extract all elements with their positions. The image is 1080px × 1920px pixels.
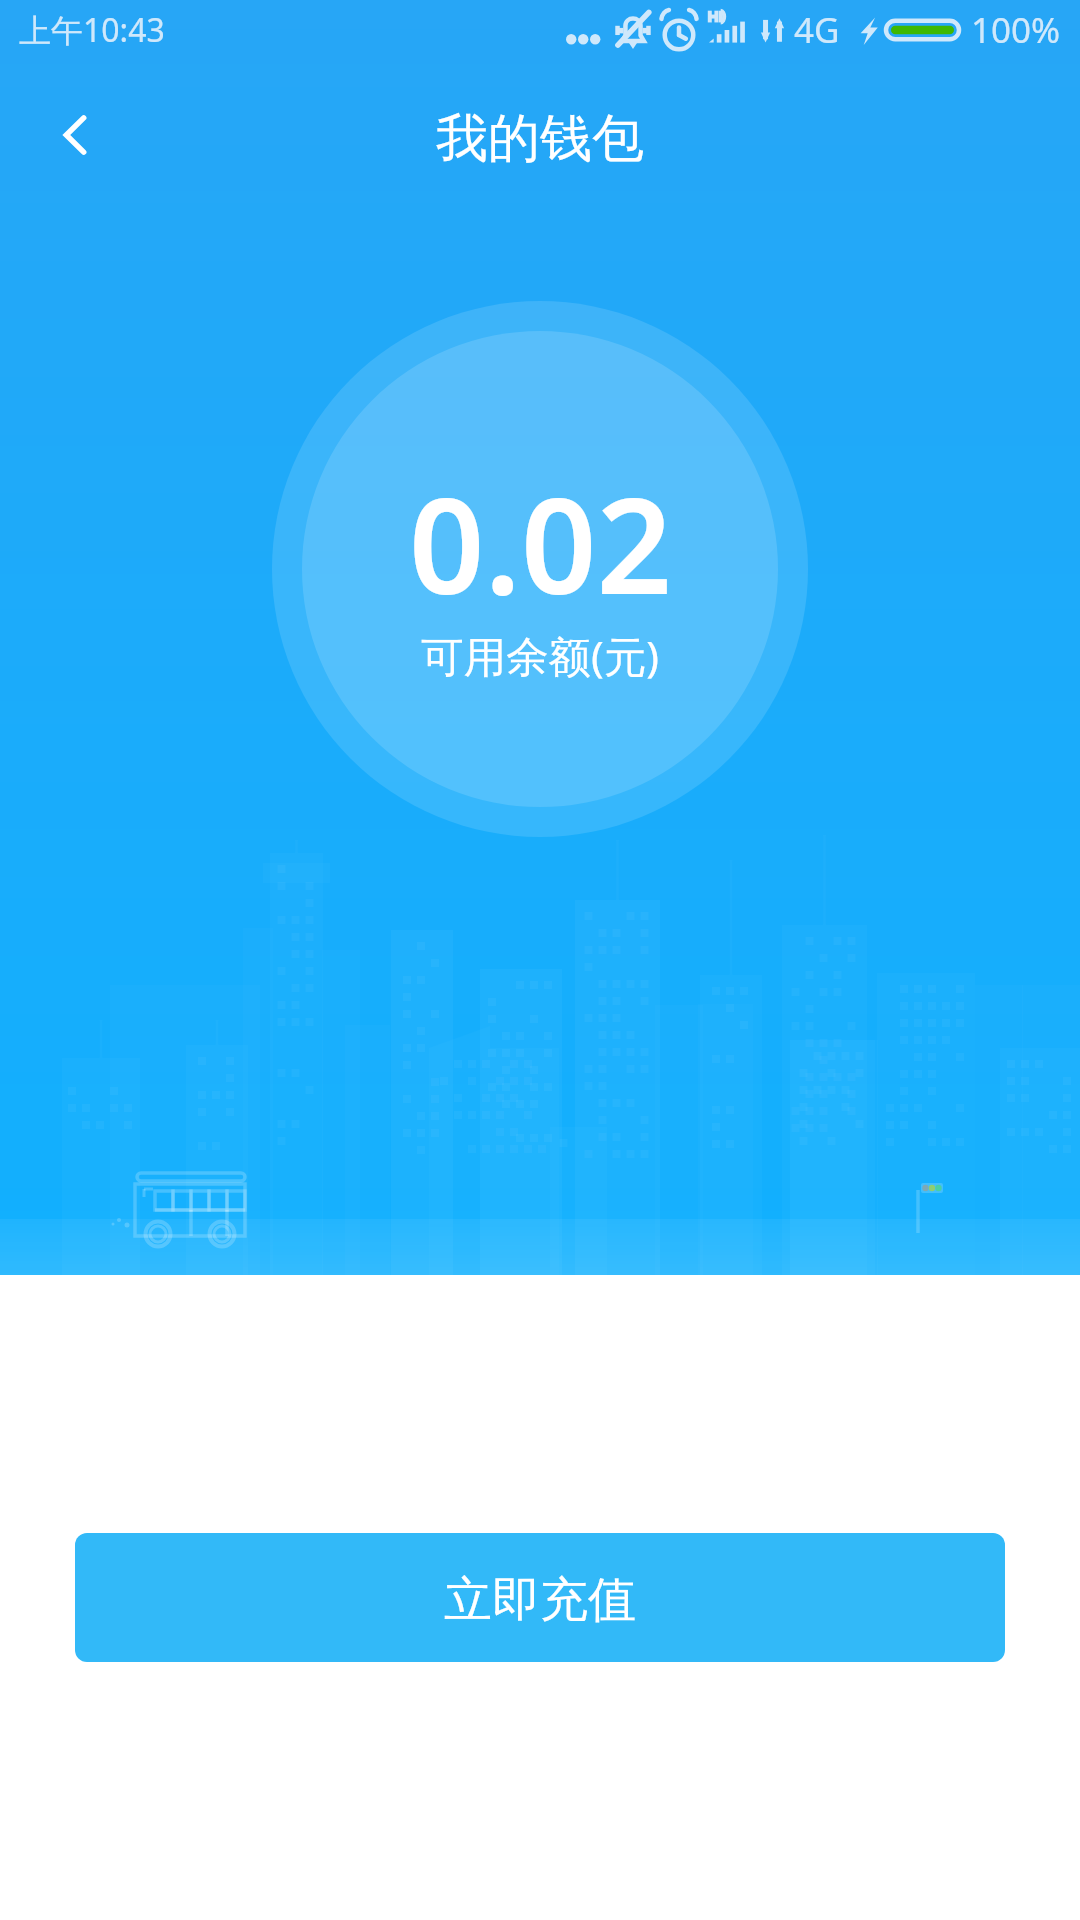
staticText: 我的钱包 bbox=[436, 106, 644, 172]
staticText: 可用余额(元) bbox=[421, 627, 659, 685]
button[interactable]: Back bbox=[15, 75, 135, 195]
staticText: 100% bbox=[971, 6, 1061, 54]
button[interactable]: 立即充值 bbox=[75, 1533, 1005, 1662]
staticText: 上午10:43 bbox=[19, 8, 165, 52]
staticText: 立即充值 bbox=[444, 1570, 636, 1630]
staticText: 4G bbox=[794, 6, 840, 54]
staticText: 0.02 bbox=[409, 453, 672, 633]
